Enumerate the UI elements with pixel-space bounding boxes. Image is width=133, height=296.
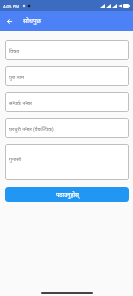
staticText: सम्पर्क नम्बर xyxy=(9,99,33,106)
staticText: पठाउनुहोस् xyxy=(56,191,79,199)
staticText: 4:05 PM xyxy=(3,3,20,9)
staticText: पुरा नाम xyxy=(9,73,25,80)
staticText: सोधपुछ xyxy=(23,16,42,25)
button[interactable]: गुनासो xyxy=(5,144,129,180)
button[interactable]: पुरा नाम xyxy=(5,66,129,86)
button[interactable]: सम्पर्क नम्बर xyxy=(5,92,129,112)
staticText: गुनासो xyxy=(9,155,21,162)
staticText: विषय xyxy=(9,47,20,54)
staticText: घरधुरी नम्बर (वैकल्पिक) xyxy=(9,125,54,132)
button[interactable]: Back xyxy=(0,11,19,31)
button[interactable]: विषय xyxy=(5,40,129,60)
button[interactable]: पठाउनुहोस् xyxy=(5,187,129,202)
button[interactable]: घरधुरी नम्बर (वैकल्पिक) xyxy=(5,118,129,138)
